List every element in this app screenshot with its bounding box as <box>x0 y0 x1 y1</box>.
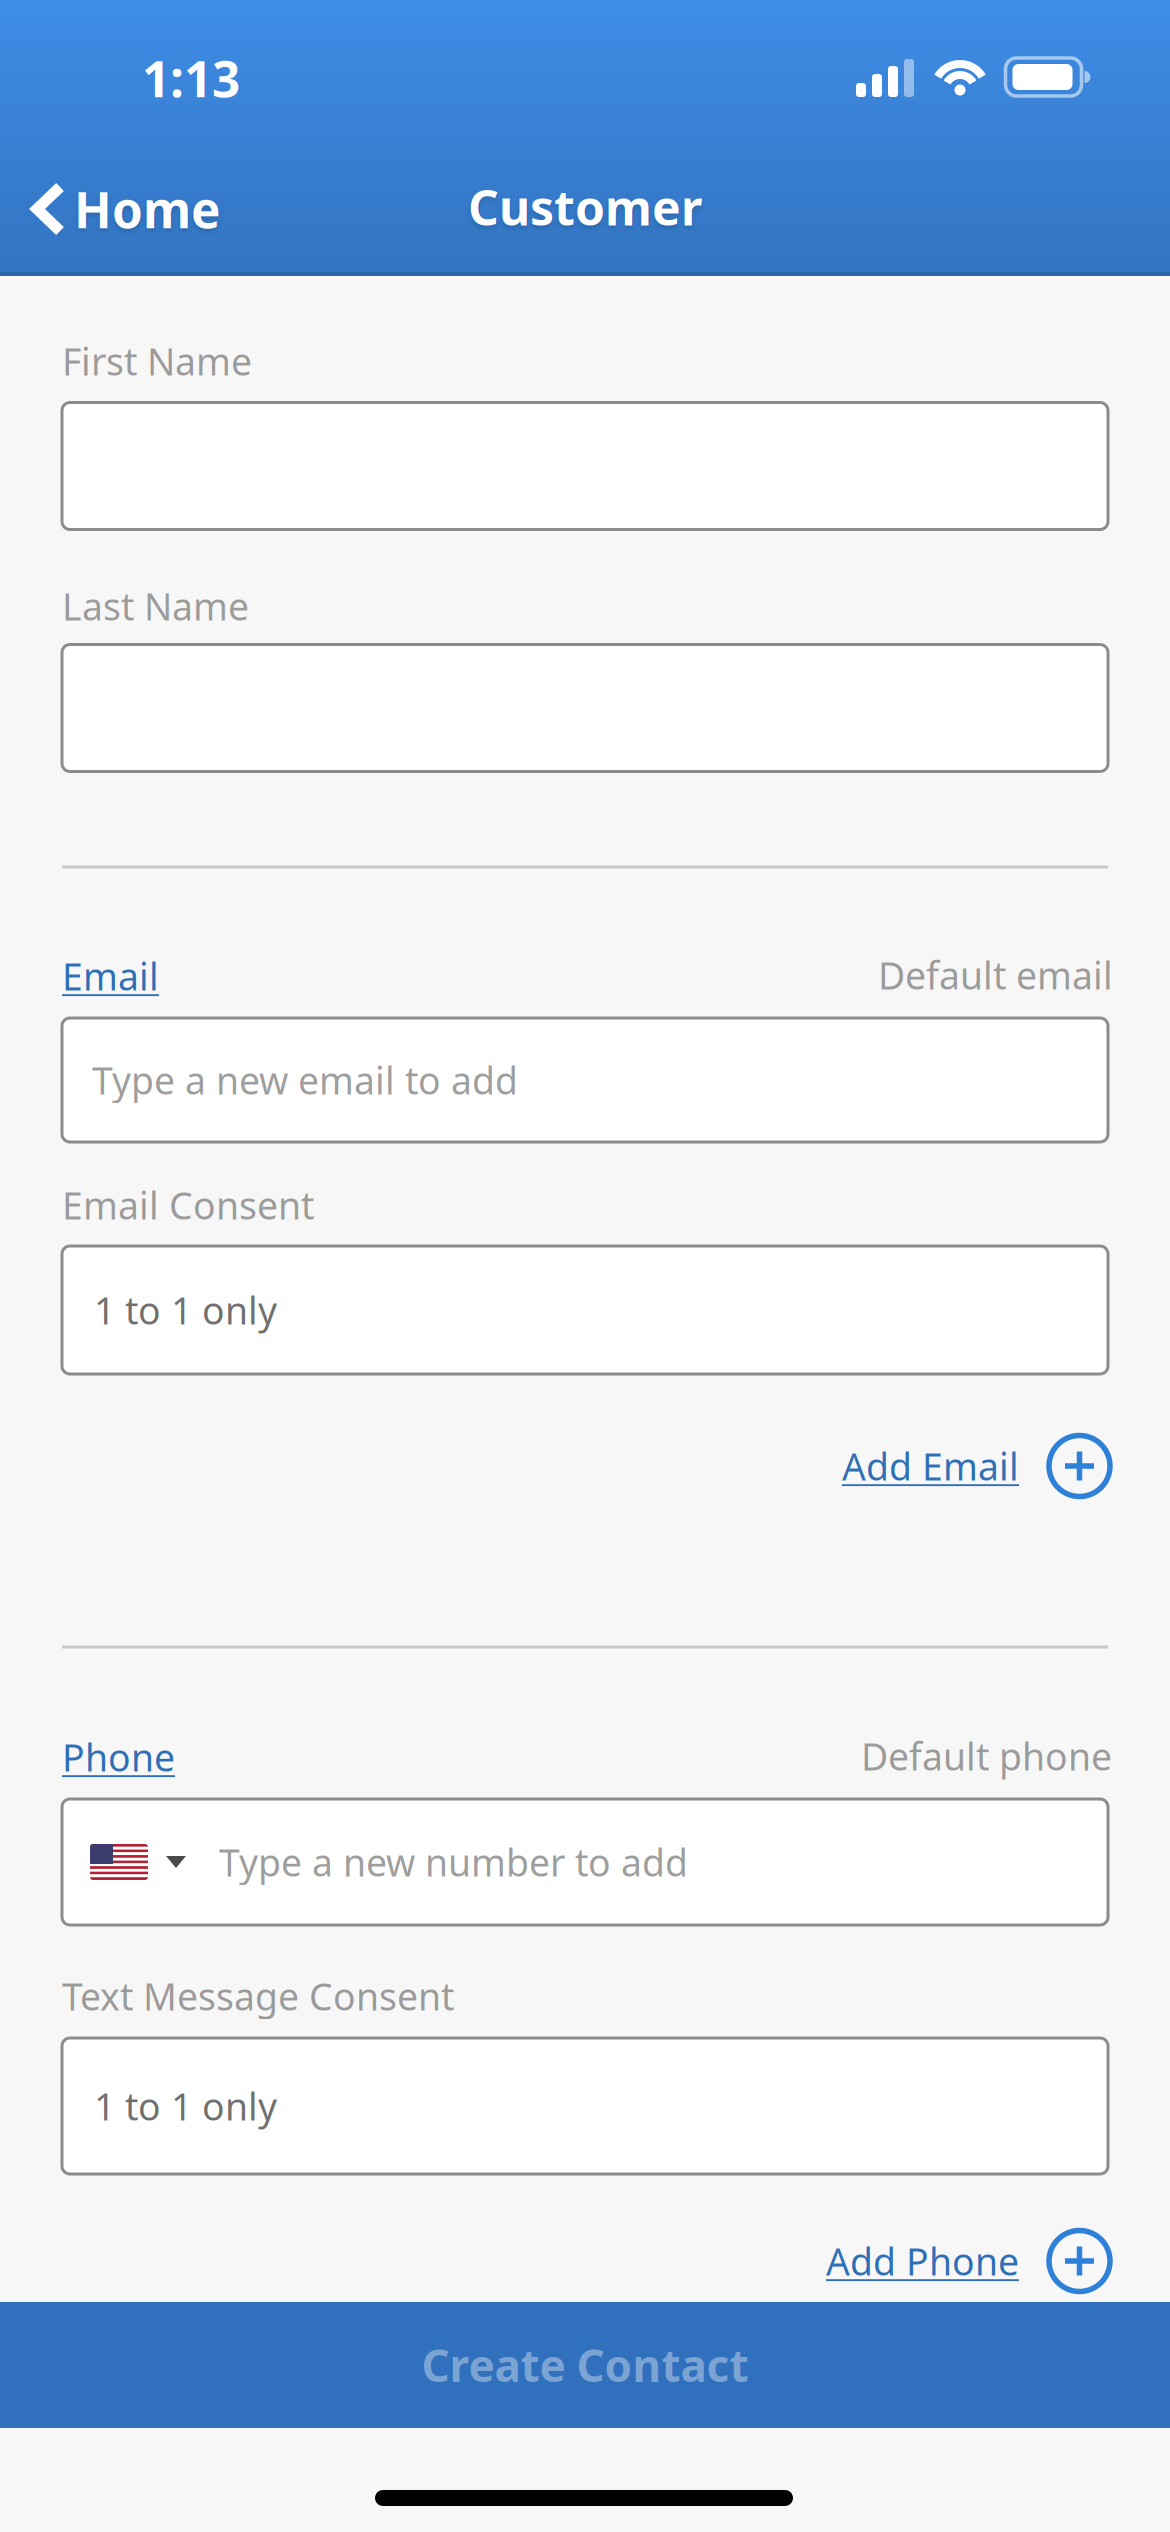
button[interactable]: Text Message Consent: 1 to 1 only <box>62 2038 1108 2174</box>
staticText: Last Name <box>62 581 249 631</box>
staticText: 1 to 1 only <box>94 1285 277 1335</box>
button[interactable]: Type a new number to add <box>62 1799 1108 1925</box>
staticText: Email <box>62 951 159 1001</box>
button[interactable]: Add Email <box>690 1431 1110 1501</box>
staticText: Add Email <box>842 1441 1019 1491</box>
staticText: Add Phone <box>826 2236 1019 2286</box>
button[interactable]: First Name <box>62 402 1108 529</box>
button[interactable]: Last Name <box>62 644 1108 771</box>
staticText: Email Consent <box>62 1180 314 1230</box>
staticText: Type a new email to add <box>92 1055 518 1105</box>
staticText: Customer <box>468 175 702 239</box>
button[interactable]: Create Contact <box>0 2302 1170 2428</box>
staticText: 1 to 1 only <box>94 2081 277 2131</box>
staticText: 1:13 <box>142 45 240 111</box>
staticText: Default phone <box>861 1731 1112 1781</box>
button[interactable]: Type a new email to add <box>62 1018 1108 1142</box>
staticText: Create Contact <box>421 2336 748 2394</box>
button[interactable]: Phone <box>62 1732 362 1782</box>
staticText: Home <box>74 176 220 242</box>
button[interactable]: Email Consent: 1 to 1 only <box>62 1246 1108 1374</box>
button[interactable]: Email <box>62 951 362 1001</box>
staticText: Type a new number to add <box>219 1837 688 1887</box>
staticText: Phone <box>62 1732 175 1782</box>
button[interactable]: Back to Home <box>30 174 350 244</box>
button[interactable]: Add Phone <box>690 2226 1110 2296</box>
staticText: First Name <box>62 336 252 386</box>
staticText: Text Message Consent <box>62 1971 454 2021</box>
staticText: Default email <box>878 950 1113 1000</box>
